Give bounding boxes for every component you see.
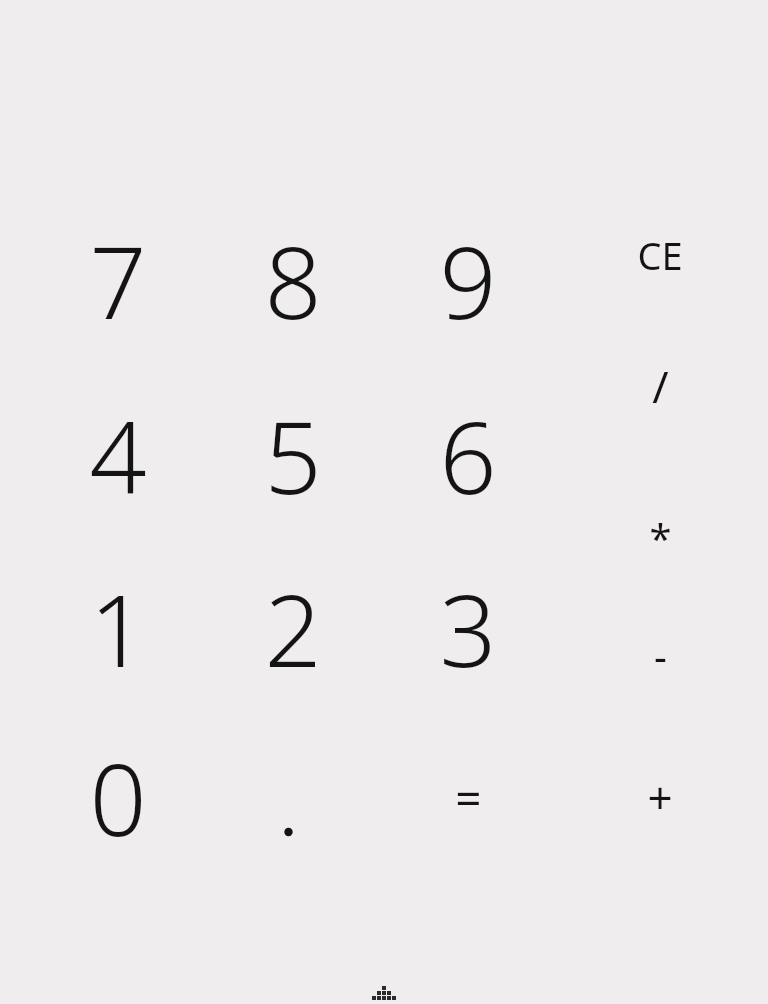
staticText: 2 <box>264 560 322 696</box>
staticText: = <box>455 766 482 829</box>
button[interactable]: Divide <box>585 321 735 451</box>
staticText: + <box>647 767 673 827</box>
button[interactable]: 4 <box>32 370 204 540</box>
staticText: 8 <box>264 212 322 348</box>
staticText: 5 <box>264 387 322 523</box>
button[interactable]: 5 <box>207 370 379 540</box>
button[interactable]: 1 <box>32 543 204 713</box>
button[interactable]: Subtract <box>585 590 735 720</box>
button[interactable]: 0 <box>32 712 204 882</box>
button[interactable]: Clear entry <box>585 190 735 320</box>
staticText: - <box>654 628 667 682</box>
staticText: 4 <box>89 387 147 523</box>
staticText: 9 <box>439 212 497 348</box>
button[interactable]: 2 <box>207 543 379 713</box>
button[interactable]: Equals <box>393 732 543 862</box>
button[interactable]: 9 <box>382 195 554 365</box>
button[interactable]: Decimal point <box>207 712 379 882</box>
staticText: / <box>652 356 669 416</box>
staticText: 6 <box>439 387 497 523</box>
button[interactable]: Multiply <box>585 472 735 602</box>
button[interactable]: 7 <box>32 195 204 365</box>
button[interactable]: 3 <box>382 543 554 713</box>
button[interactable]: 8 <box>207 195 379 365</box>
button[interactable]: 6 <box>382 370 554 540</box>
button[interactable]: Add <box>585 732 735 862</box>
staticText: 0 <box>89 729 147 865</box>
staticText: 7 <box>89 212 147 348</box>
staticText: * <box>649 510 672 564</box>
staticText: 3 <box>439 560 497 696</box>
staticText: CE <box>637 229 683 281</box>
staticText: 1 <box>89 560 147 696</box>
